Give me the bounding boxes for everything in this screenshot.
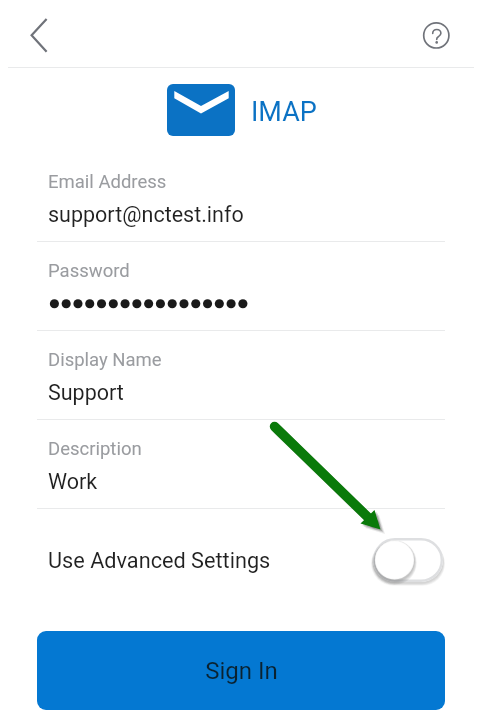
staticText: Description (48, 438, 142, 460)
staticText: Display Name (48, 349, 162, 371)
staticText: IMAP (251, 96, 317, 128)
staticText: Work (48, 469, 98, 494)
staticText: Password (48, 260, 130, 282)
staticText: Support (48, 380, 124, 405)
button[interactable]: Password (37, 241, 445, 330)
staticText: Sign In (205, 657, 278, 685)
button[interactable]: Email Address (37, 152, 445, 241)
button[interactable]: Description (37, 419, 445, 508)
button[interactable]: Back (16, 13, 56, 53)
button[interactable]: Help (416, 15, 456, 55)
staticText: Use Advanced Settings (48, 548, 271, 573)
button[interactable]: Use Advanced Settings (37, 521, 445, 599)
button[interactable]: Display Name (37, 330, 445, 419)
button[interactable]: Use Advanced Settings toggle, off (373, 538, 443, 582)
staticText: Email Address (48, 171, 167, 193)
button[interactable]: Sign In (37, 631, 445, 710)
staticText: support@nctest.info (48, 202, 244, 227)
